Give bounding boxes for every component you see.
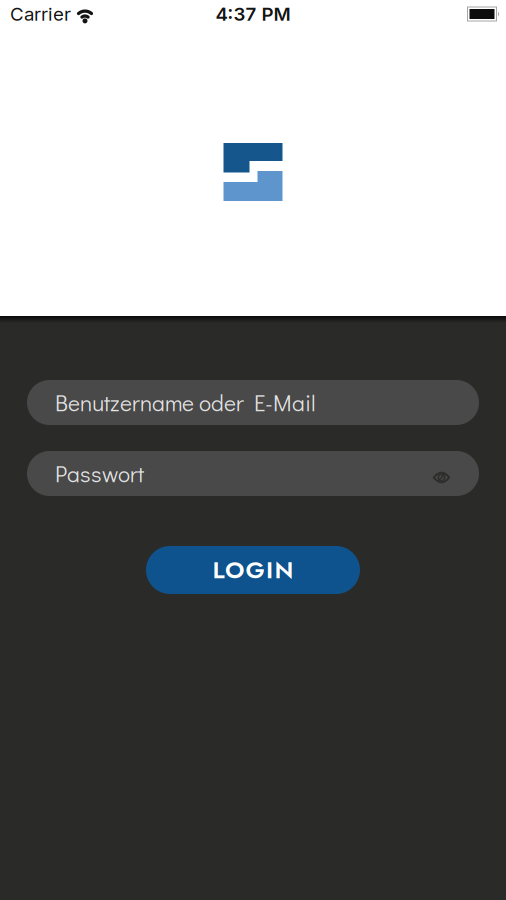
staticText: Benutzername oder E-Mail	[55, 388, 316, 417]
button[interactable]: Benutzername oder E-Mail	[27, 380, 479, 425]
button[interactable]: Passwort anzeigen	[433, 467, 450, 480]
staticText: LOGIN	[212, 553, 293, 587]
staticText: Passwort	[55, 459, 144, 488]
button[interactable]: Passwort	[27, 451, 479, 496]
staticText: Carrier	[10, 3, 71, 25]
button[interactable]: LOGIN	[146, 546, 360, 594]
staticText: 4:37 PM	[215, 3, 290, 25]
